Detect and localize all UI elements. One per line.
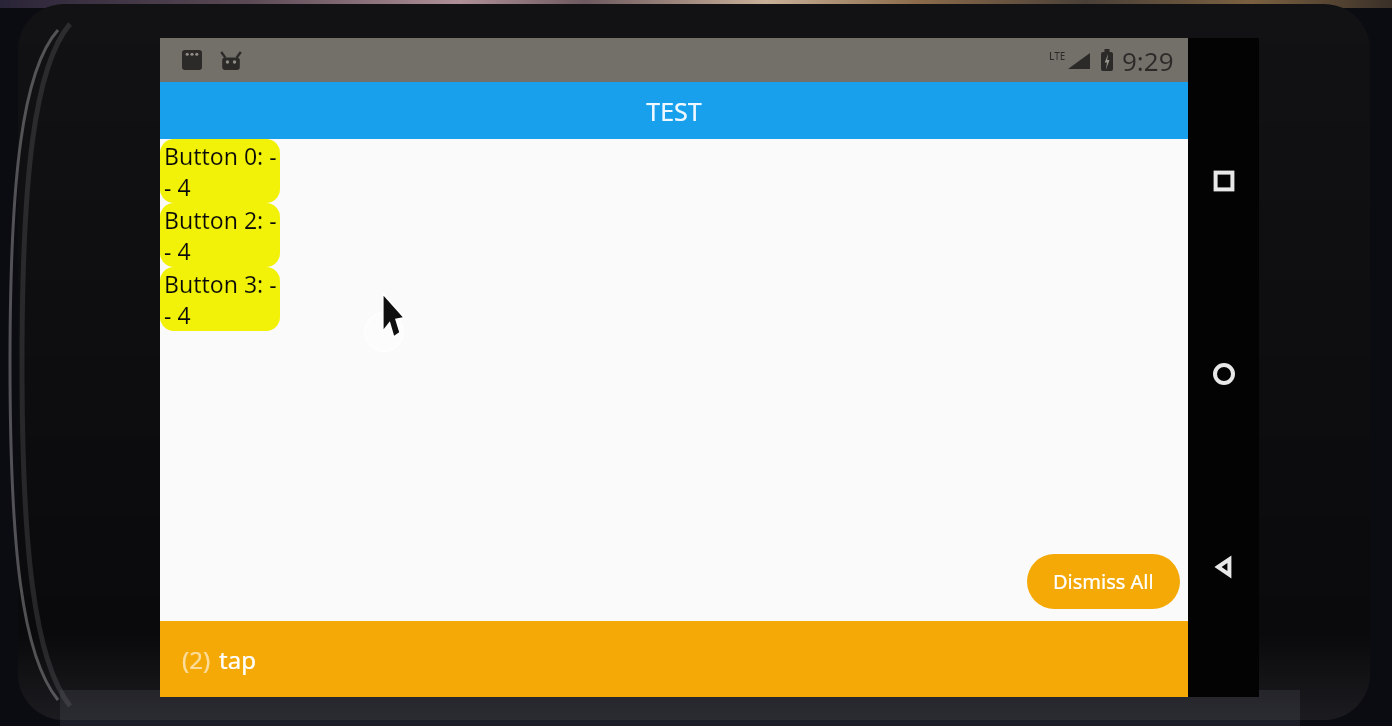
staticText: Button 3: -	[164, 268, 277, 299]
button[interactable]: Home	[1198, 348, 1250, 400]
staticText: tap	[219, 643, 256, 676]
staticText: - 4	[164, 299, 191, 330]
staticText: TEST	[646, 94, 702, 128]
button[interactable]: Dismiss All	[1027, 554, 1180, 609]
button[interactable]: Button 2: -	[160, 203, 280, 267]
staticText: - 4	[164, 171, 191, 202]
staticText: 9:29	[1122, 43, 1174, 78]
staticText: Button 2: -	[164, 204, 277, 235]
button[interactable]: Recent apps	[1198, 155, 1250, 207]
button[interactable]: (2)	[160, 621, 1188, 697]
staticText: (2)	[182, 643, 211, 676]
button[interactable]: Button 3: -	[160, 267, 280, 331]
button[interactable]: Back	[1198, 541, 1250, 593]
button[interactable]: Button 0: -	[160, 139, 280, 203]
staticText: Button 0: -	[164, 140, 277, 171]
staticText: - 4	[164, 235, 191, 266]
staticText: Dismiss All	[1053, 568, 1154, 595]
staticText: LTE	[1049, 49, 1066, 63]
